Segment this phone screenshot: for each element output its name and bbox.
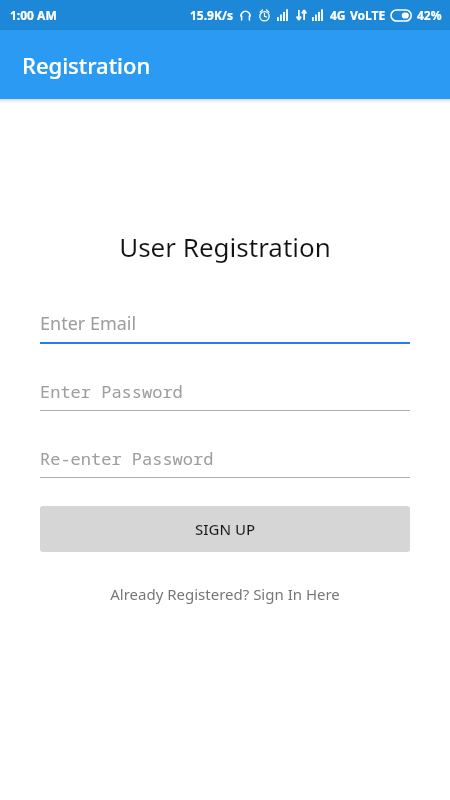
staticText: SIGN UP bbox=[195, 519, 256, 539]
button[interactable]: SIGN UP bbox=[40, 506, 410, 552]
staticText: Enter Password bbox=[40, 380, 183, 403]
staticText: Re-enter Password bbox=[40, 447, 214, 470]
button[interactable]: Already Registered? Sign In Here bbox=[0, 578, 450, 610]
staticText: 1:00 AM bbox=[10, 7, 57, 23]
staticText: User Registration bbox=[0, 229, 450, 264]
button[interactable]: Enter Email bbox=[40, 308, 410, 344]
staticText: 15.9K/s bbox=[190, 7, 233, 23]
staticText: VoLTE bbox=[350, 7, 386, 23]
staticText: 42% bbox=[417, 7, 442, 23]
button[interactable]: Enter Password bbox=[40, 376, 410, 411]
button[interactable]: Re-enter Password bbox=[40, 443, 410, 478]
staticText: Enter Email bbox=[40, 311, 137, 336]
staticText: Already Registered? Sign In Here bbox=[110, 584, 340, 604]
staticText: Registration bbox=[22, 50, 151, 80]
staticText: 4G bbox=[330, 7, 346, 23]
